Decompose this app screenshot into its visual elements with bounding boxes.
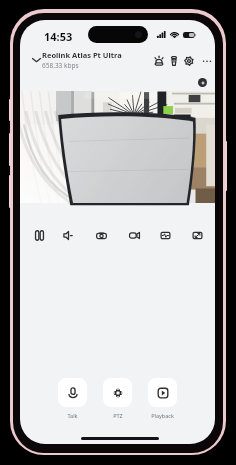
button[interactable]: Snapshot [92,226,110,244]
button[interactable]: Flashlight [166,53,181,68]
button[interactable] [58,378,87,407]
button[interactable]: Full screen [188,226,206,244]
button[interactable]: Record [125,226,143,244]
staticText: Talk [67,412,78,419]
button[interactable]: Stream quality [156,226,174,244]
button[interactable]: Siren [151,53,166,68]
button[interactable]: Settings [181,53,196,68]
staticText: 658.33 kbps [42,61,79,70]
button[interactable]: Pause [30,226,48,244]
button[interactable]: Collapse [28,52,44,68]
button[interactable]: Mute [59,226,77,244]
button[interactable] [103,378,132,407]
button[interactable]: More options [199,53,214,68]
button[interactable]: AI scene [198,78,207,87]
button[interactable] [148,378,177,407]
staticText: Playback [151,412,174,419]
staticText: Reolink Atlas Pt Ultra [42,50,122,60]
staticText: PTZ [113,412,123,419]
staticText: 14:53 [44,29,73,44]
